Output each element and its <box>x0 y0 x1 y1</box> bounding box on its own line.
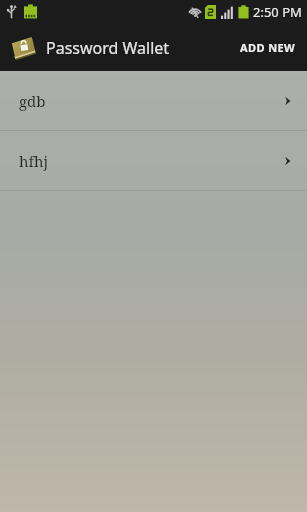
button[interactable]: Password Wallet <box>10 34 170 61</box>
button[interactable]: hfhj <box>0 131 307 190</box>
staticText: Password Wallet <box>46 37 170 59</box>
staticText: 2:50 PM <box>253 3 302 21</box>
staticText: ADD NEW <box>240 40 296 55</box>
staticText: gdb <box>19 91 283 111</box>
other: Password Wallet <box>10 34 37 61</box>
button[interactable]: ADD NEW <box>229 23 307 71</box>
staticText: hfhj <box>19 151 283 171</box>
button[interactable]: gdb <box>0 71 307 130</box>
